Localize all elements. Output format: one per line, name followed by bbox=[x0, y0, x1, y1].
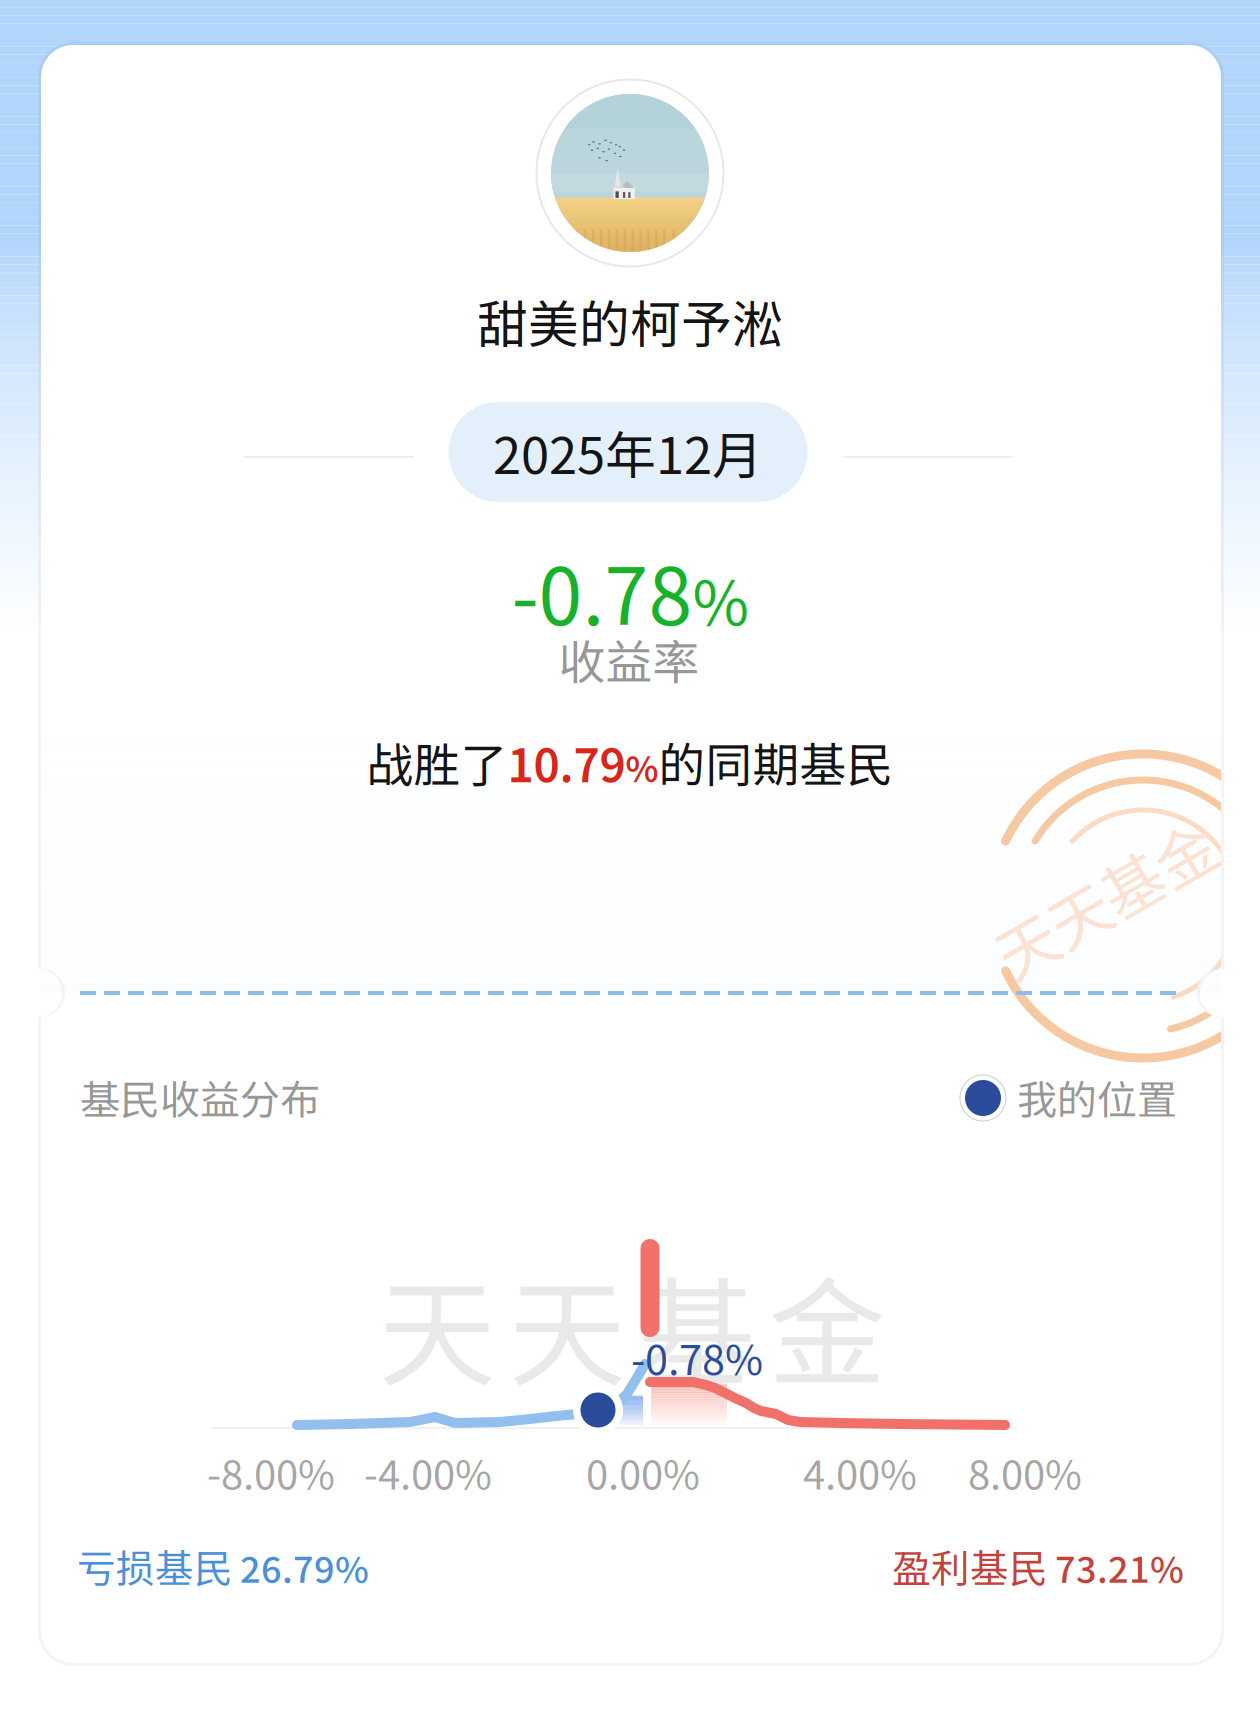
staticText: 天天基金 bbox=[983, 854, 1227, 942]
staticText: 亏损基民 bbox=[77, 1538, 233, 1594]
staticText: 0.00% bbox=[586, 1443, 700, 1501]
staticText: 甜美的柯予淞 bbox=[477, 284, 783, 358]
staticText: -0.78 bbox=[511, 534, 692, 648]
staticText: 基民收益分布 bbox=[80, 1068, 320, 1126]
staticText: 收益率 bbox=[558, 625, 699, 693]
staticText: 战胜了 bbox=[366, 728, 507, 796]
staticText: % bbox=[692, 554, 748, 643]
staticText: 10.79 bbox=[507, 730, 625, 795]
staticText: -0.78% bbox=[631, 1327, 763, 1387]
staticText: 天天基金 bbox=[378, 1240, 885, 1410]
staticText: % bbox=[625, 742, 658, 792]
staticText: 的同期基民 bbox=[658, 728, 893, 796]
staticText: 盈利基民 bbox=[892, 1538, 1048, 1594]
staticText: -8.00% bbox=[207, 1443, 335, 1501]
staticText: 4.00% bbox=[803, 1443, 917, 1501]
staticText: 我的位置 bbox=[1017, 1068, 1177, 1126]
staticText: 26.79% bbox=[240, 1541, 369, 1593]
staticText: 2025年12月 bbox=[493, 415, 763, 489]
staticText: 73.21% bbox=[1055, 1541, 1184, 1593]
staticText: -4.00% bbox=[364, 1443, 492, 1501]
staticText: 8.00% bbox=[968, 1443, 1082, 1501]
